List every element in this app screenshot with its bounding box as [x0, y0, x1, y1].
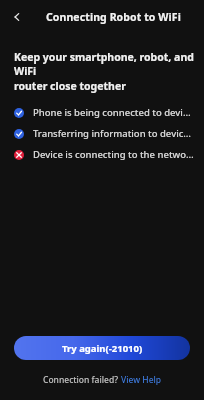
- staticText: View Help: [121, 374, 162, 386]
- button[interactable]: Phone is being connected to device…: [0, 102, 204, 123]
- staticText: Keep your smartphone, robot, and WiFi ro…: [14, 50, 194, 93]
- staticText: Phone is being connected to device…: [33, 106, 194, 119]
- staticText: Try again(-21010): [62, 342, 143, 355]
- staticText: Connecting Robot to WiFi: [46, 10, 181, 24]
- button[interactable]: Try again(-21010): [14, 336, 190, 360]
- button[interactable]: Transferring information to device…: [0, 123, 204, 144]
- staticText: Connection failed?: [43, 374, 121, 386]
- button[interactable]: Back: [6, 6, 28, 28]
- button[interactable]: View Help: [121, 374, 162, 386]
- staticText: Transferring information to device…: [33, 127, 194, 140]
- staticText: Device is connecting to the network…: [33, 148, 194, 161]
- button[interactable]: Device is connecting to the network…: [0, 144, 204, 165]
